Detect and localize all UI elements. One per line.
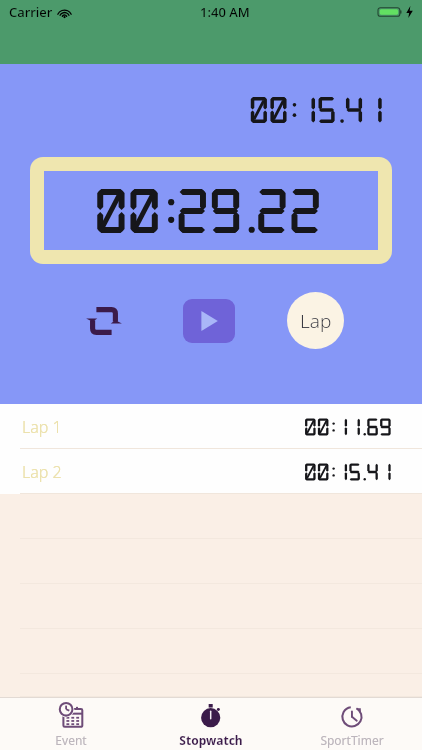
button[interactable]: Event	[1, 697, 141, 750]
staticText: Stopwatch	[179, 732, 243, 748]
staticText: Lap 1	[22, 416, 62, 438]
staticText: Carrier	[9, 3, 53, 21]
button[interactable]: Lap 1	[0, 404, 422, 449]
button[interactable]: Stopwatch	[141, 697, 281, 750]
staticText: Lap 2	[22, 461, 62, 483]
button[interactable]: Lap 2	[0, 449, 422, 494]
staticText: 1:40 AM	[200, 3, 250, 21]
staticText: Event	[55, 732, 87, 748]
button[interactable]: Start	[183, 299, 235, 343]
button[interactable]: Reset	[78, 295, 130, 347]
staticText: SportTimer	[320, 732, 384, 748]
staticText: Lap	[300, 308, 332, 334]
button[interactable]: SportTimer	[282, 697, 422, 750]
button[interactable]: Lap	[287, 292, 344, 349]
